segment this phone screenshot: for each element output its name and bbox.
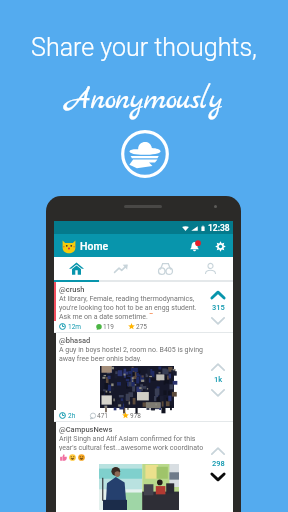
button[interactable]: Explore bbox=[143, 257, 188, 280]
staticText: 471 bbox=[97, 412, 108, 420]
button[interactable]: Upvote bbox=[211, 447, 225, 455]
button[interactable]: Settings bbox=[212, 238, 228, 254]
staticText: 2h bbox=[68, 412, 76, 420]
button[interactable]: Profile bbox=[188, 257, 233, 280]
button[interactable]: Notifications bbox=[186, 238, 202, 254]
button[interactable]: Upvote bbox=[211, 291, 225, 299]
button[interactable]: @crush bbox=[54, 282, 233, 333]
staticText: Arijt Singh and Atif Aslam confirmed for… bbox=[59, 435, 203, 451]
staticText: At library, Female, reading thermodynami… bbox=[59, 295, 197, 320]
staticText: A guy in boys hostel 2, room no. B405 is… bbox=[59, 346, 203, 362]
staticText: @CampusNews bbox=[59, 425, 113, 434]
staticText: 119 bbox=[103, 323, 114, 331]
staticText: Anonymously bbox=[66, 81, 223, 120]
staticText: 12:38 bbox=[208, 223, 230, 233]
button[interactable]: Trending bbox=[98, 257, 143, 280]
staticText: 12m bbox=[68, 323, 82, 331]
button[interactable]: @bhasad bbox=[54, 333, 233, 422]
button[interactable]: Home bbox=[54, 257, 98, 280]
button[interactable]: Downvote bbox=[211, 317, 225, 325]
staticText: @crush bbox=[59, 285, 85, 294]
staticText: 298 bbox=[212, 459, 225, 468]
staticText: 978 bbox=[130, 412, 141, 420]
staticText: 315 bbox=[212, 303, 225, 312]
button[interactable]: @CampusNews bbox=[54, 422, 233, 512]
button[interactable]: Upvote bbox=[211, 363, 225, 371]
staticText: Share your thoughts, bbox=[31, 33, 257, 62]
staticText: @bhasad bbox=[59, 336, 91, 345]
staticText: 1k bbox=[214, 375, 223, 384]
button[interactable]: Downvote bbox=[211, 473, 225, 481]
staticText: 275 bbox=[136, 323, 147, 331]
button[interactable]: Downvote bbox=[211, 389, 225, 397]
staticText: Home bbox=[80, 240, 109, 252]
